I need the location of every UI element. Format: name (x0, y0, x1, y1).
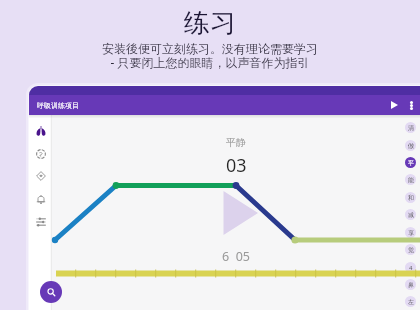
button[interactable]: 鼻 (405, 279, 416, 290)
button[interactable]: Timer (29, 143, 52, 165)
button[interactable]: 减 (405, 209, 416, 220)
button[interactable]: 能 (405, 174, 416, 185)
staticText: 减 (408, 211, 414, 219)
button[interactable]: 清 (405, 122, 416, 133)
staticText: 平静 (226, 136, 246, 149)
button[interactable]: Reminders (29, 188, 52, 210)
button[interactable]: 倣 (405, 140, 416, 151)
staticText: 6 05 (196, 248, 276, 265)
button[interactable]: 和 (405, 192, 416, 203)
staticText: 4 (409, 264, 413, 272)
button[interactable]: Play (385, 95, 403, 115)
staticText: 觉 (408, 246, 414, 254)
staticText: 左 (408, 298, 414, 306)
staticText: 倣 (408, 142, 414, 150)
button[interactable]: 享 (405, 227, 416, 238)
button[interactable]: Focus (29, 165, 52, 187)
button[interactable]: More options (403, 95, 419, 115)
staticText: 安装後便可立刻练习。没有理论需要学习 - 只要闭上您的眼睛，以声音作为指引 (102, 41, 318, 71)
button[interactable]: Settings (29, 211, 52, 233)
button[interactable]: 觉 (405, 244, 416, 255)
button[interactable]: Search (40, 281, 62, 303)
staticText: 清 (408, 124, 414, 132)
staticText: 鼻 (408, 281, 414, 289)
staticText: 练习 (184, 7, 236, 40)
staticText: 呼吸训练项目 (37, 101, 79, 110)
staticText: 享 (408, 229, 414, 237)
button[interactable]: 4 (405, 262, 416, 273)
staticText: 平 (408, 159, 414, 167)
staticText: 03 (226, 153, 247, 178)
staticText: 能 (408, 176, 414, 184)
button[interactable]: 左 (405, 296, 416, 307)
button[interactable]: 平 (405, 157, 416, 168)
button[interactable]: Breathing (29, 120, 52, 142)
staticText: 和 (408, 194, 414, 202)
